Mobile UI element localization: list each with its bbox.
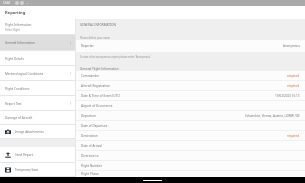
- staticText: Flight Number: [81, 164, 103, 168]
- staticText: !: [70, 101, 71, 106]
- staticText: Commander: [81, 74, 100, 78]
- button[interactable]: Date & Time of Event (UTC): [76, 91, 305, 100]
- staticText: Select flight: [5, 28, 20, 32]
- staticText: Temporary Save: [15, 168, 39, 172]
- staticText: Date of Departure: [81, 124, 108, 128]
- staticText: Airport of Occurrence: [81, 104, 113, 108]
- button[interactable]: General Information: [0, 35, 75, 51]
- staticText: required: [287, 134, 300, 138]
- staticText: Date & Time of Event (UTC): [81, 94, 121, 98]
- button[interactable]: Date of Departure: [76, 121, 305, 130]
- staticText: Flight Information: [5, 23, 32, 27]
- button[interactable]: Airport of Occurrence: [76, 101, 305, 110]
- staticText: 12:44: [3, 1, 10, 5]
- staticText: required: [287, 84, 300, 88]
- button[interactable]: Date of Arrival: [76, 141, 305, 150]
- staticText: 19/02/2023 16:13: [275, 94, 300, 98]
- staticText: Destination: [81, 134, 98, 138]
- staticText: Meteorological Conditions: [5, 72, 44, 76]
- staticText: General Flight Information: [80, 67, 119, 71]
- button[interactable]: Meteorological Conditions: [0, 66, 75, 81]
- button[interactable]: Damage of Aircraft: [0, 111, 75, 125]
- staticText: Flight Details: [5, 57, 24, 61]
- button[interactable]: Flight Details: [0, 51, 75, 66]
- button[interactable]: Flight Number: [76, 161, 305, 170]
- staticText: Date of Arrival: [81, 144, 102, 148]
- staticText: Please define your name: [80, 36, 111, 40]
- button[interactable]: Diversion to: [76, 151, 305, 160]
- staticText: Departure: [81, 114, 96, 118]
- button[interactable]: Report Text: [0, 96, 75, 111]
- staticText: Reporting: [5, 10, 26, 16]
- staticText: Reporter: [81, 44, 94, 48]
- staticText: !: [70, 71, 71, 76]
- staticText: In case of an anonymous report please en…: [80, 55, 151, 59]
- staticText: Flight Conditions: [5, 87, 30, 91]
- button[interactable]: Flight Conditions: [0, 81, 75, 96]
- staticText: Schwechat, Vienna, Austria, LOWW, VIE: [245, 114, 300, 118]
- staticText: required: [287, 74, 300, 78]
- button[interactable]: Temporary Save: [0, 163, 75, 177]
- button[interactable]: Departure: [76, 111, 305, 120]
- staticText: Diversion to: [81, 154, 99, 158]
- button[interactable]: Aircraft Registration: [76, 81, 305, 90]
- staticText: !: [70, 41, 71, 46]
- staticText: Send Report: [15, 153, 33, 157]
- button[interactable]: Reporter: [76, 40, 305, 52]
- button[interactable]: Destination: [76, 131, 305, 140]
- button[interactable]: Flight Phase: [76, 171, 305, 177]
- other: Home: [143, 180, 162, 181]
- staticText: Image Attachments: [15, 130, 44, 134]
- staticText: GENERAL INFORMATION: [80, 23, 116, 27]
- staticText: General Information: [5, 41, 35, 45]
- staticText: Report Text: [5, 102, 22, 106]
- staticText: Damage of Aircraft: [5, 116, 33, 120]
- staticText: Flight Phase: [81, 172, 99, 176]
- button[interactable]: Flight Information: [0, 19, 75, 35]
- staticText: Aircraft Registration: [81, 84, 111, 88]
- button[interactable]: Image Attachments: [0, 125, 75, 139]
- button[interactable]: Commander: [76, 71, 305, 80]
- button[interactable]: Send Report: [0, 147, 75, 163]
- staticText: Anonymous: [283, 44, 300, 48]
